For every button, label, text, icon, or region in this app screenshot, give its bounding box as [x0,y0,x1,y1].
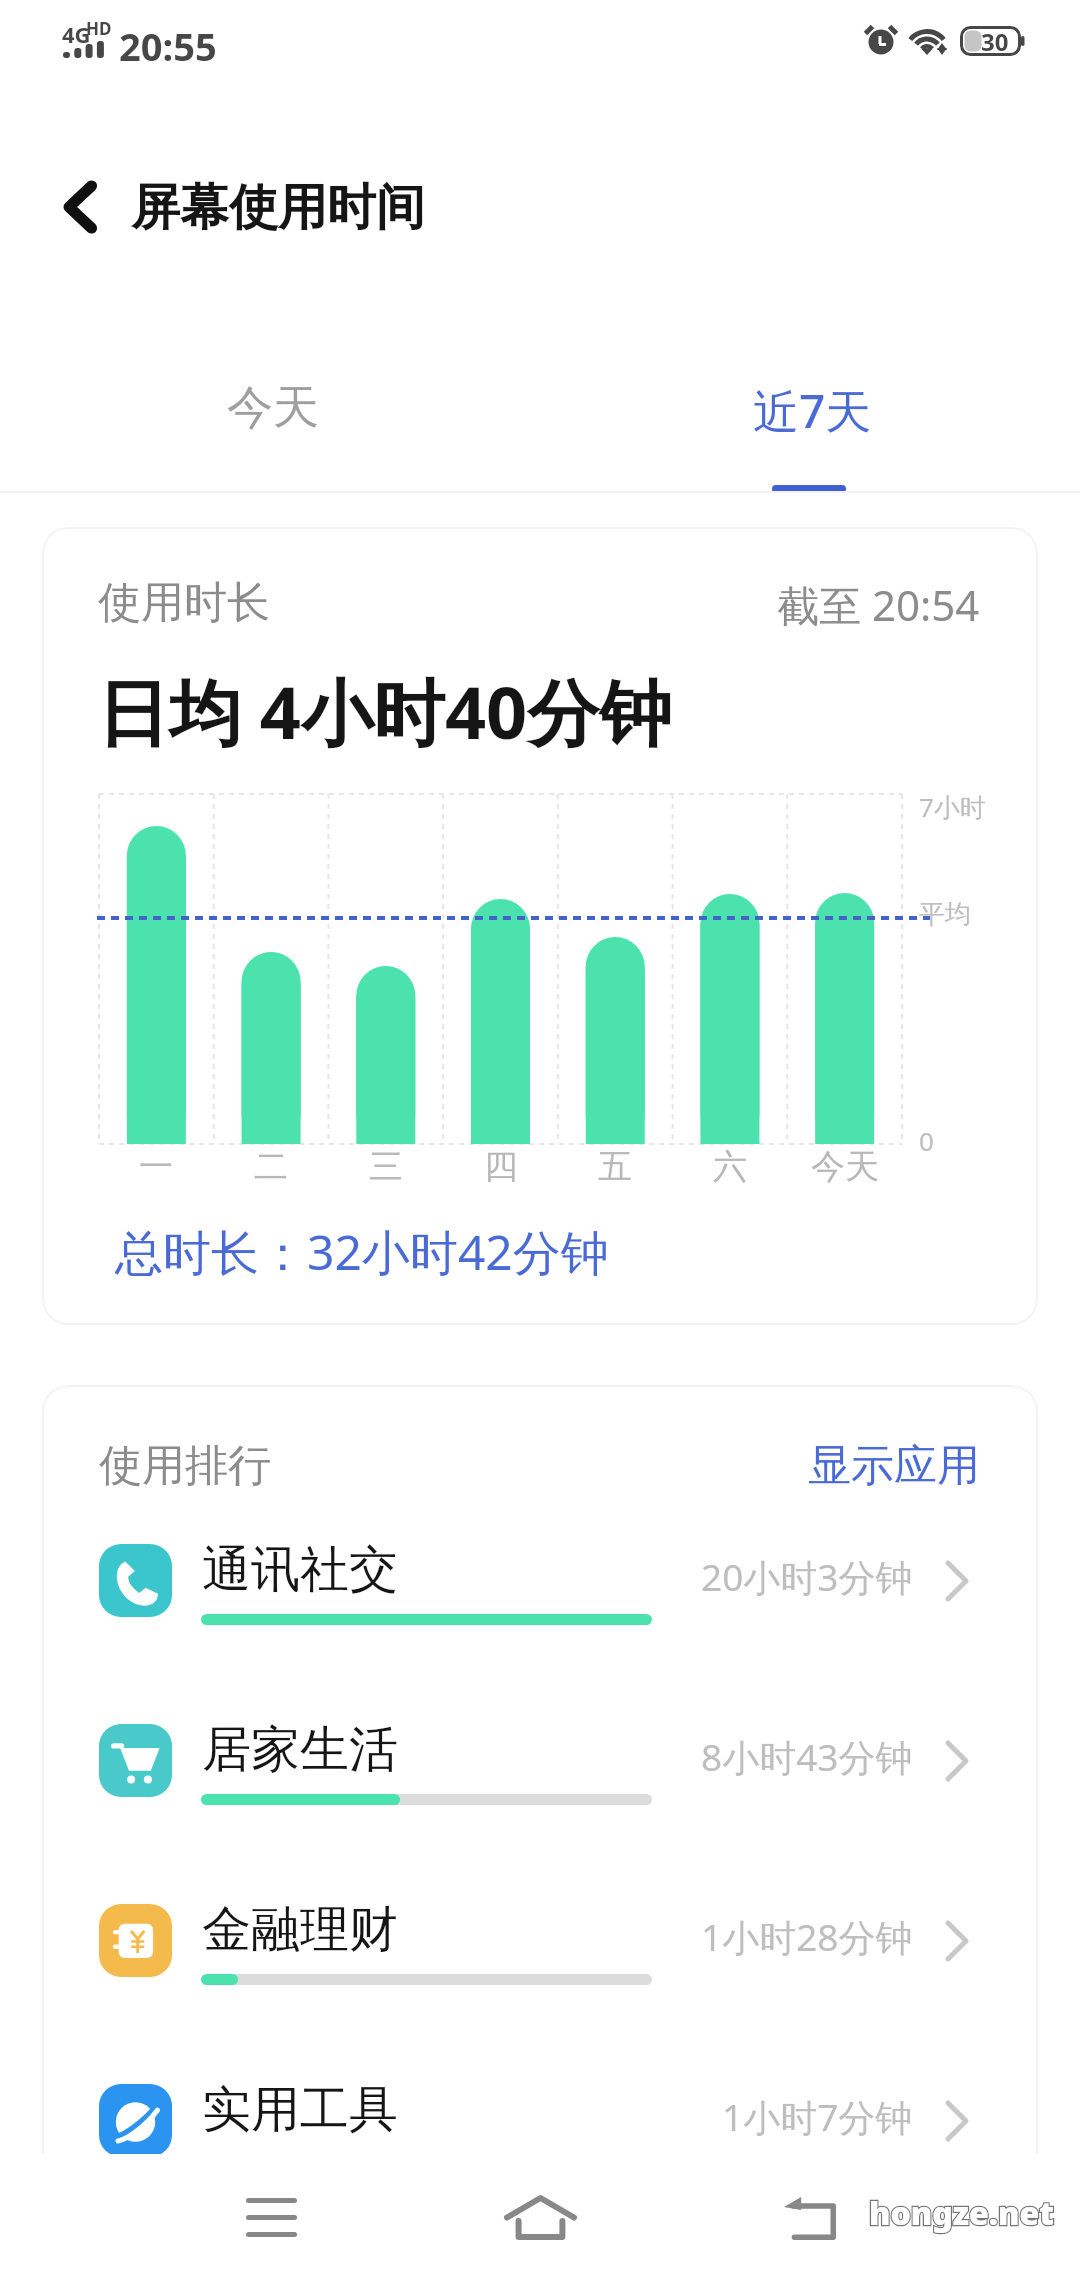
staticText: 金融理财 [202,1899,398,1961]
staticText: 日均 4小时40分钟 [97,662,672,760]
staticText: 屏幕使用时间 [131,177,425,239]
button[interactable]: 近7天 [677,348,947,498]
staticText: 实用工具 [202,2079,398,2141]
button[interactable]: Back [26,152,136,262]
button[interactable]: 居家生活 [42,1693,1038,1873]
button[interactable]: 实用工具 [42,2053,1038,2233]
staticText: 30 [981,25,1009,55]
staticText: 20:55 [119,20,217,72]
button[interactable]: 金融理财 [42,1873,1038,2053]
button[interactable]: 今天 [138,348,408,476]
staticText: 20小时3分钟 [701,1551,913,1602]
button[interactable]: Home [470,2160,610,2275]
staticText: 今天 [227,379,319,437]
staticText: 7小时 [919,789,986,825]
staticText: 1小时28分钟 [701,1911,913,1962]
staticText: hongze.net [869,2191,1055,2235]
staticText: 居家生活 [202,1719,398,1781]
button[interactable]: Recents [201,2160,341,2275]
staticText: 平均 [919,898,971,931]
staticText: 0 [919,1123,934,1158]
staticText: 通讯社交 [202,1539,398,1601]
staticText: 三 [369,1145,403,1188]
staticText: 二 [254,1145,288,1188]
staticText: 六 [713,1145,747,1188]
staticText: 截至 20:54 [777,576,980,633]
staticText: 今天 [811,1145,879,1188]
staticText: hongze.net [869,2191,1055,2235]
staticText: 8小时43分钟 [701,1731,913,1782]
button[interactable]: Back [740,2160,880,2275]
button[interactable]: 显示应用 [808,1439,980,1493]
staticText: 使用时长 [98,576,270,630]
staticText: 近7天 [753,379,872,442]
staticText: HD [86,17,112,40]
staticText: 四 [484,1145,518,1188]
button[interactable]: 通讯社交 [42,1513,1038,1693]
staticText: 一 [139,1145,173,1188]
staticText: 使用排行 [99,1439,271,1493]
staticText: 总时长：32小时42分钟 [115,1219,609,1285]
staticText: 显示应用 [808,1439,980,1493]
staticText: 1小时7分钟 [722,2091,913,2142]
staticText: 五 [598,1145,632,1188]
staticText: 4G [62,19,91,49]
